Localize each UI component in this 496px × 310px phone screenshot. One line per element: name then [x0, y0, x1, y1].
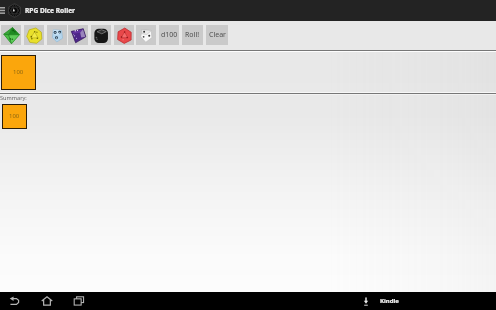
button[interactable]: Back: [7, 293, 23, 309]
staticText: RPG Dice Roller: [25, 6, 76, 15]
button[interactable]: d100: [159, 25, 179, 45]
staticText: 100: [9, 112, 20, 120]
staticText: Clear: [209, 30, 226, 40]
button[interactable]: Recents: [71, 293, 87, 309]
button[interactable]: Menu: [0, 0, 6, 21]
button[interactable]: d12: [91, 25, 111, 45]
button[interactable]: 100: [3, 105, 26, 128]
button[interactable]: Home: [39, 293, 55, 309]
button[interactable]: 100: [2, 56, 35, 89]
button[interactable]: Clear: [206, 25, 228, 45]
button[interactable]: d20: [114, 25, 134, 45]
button[interactable]: d10: [68, 25, 88, 45]
staticText: Roll!: [185, 30, 200, 40]
staticText: Summary:: [0, 94, 27, 102]
button[interactable]: d100: [136, 25, 156, 45]
button[interactable]: d8: [47, 25, 67, 45]
button[interactable]: Kindle: [360, 297, 402, 306]
button[interactable]: App icon: [6, 0, 22, 21]
staticText: 100: [13, 68, 24, 76]
staticText: Kindle: [380, 297, 399, 305]
button[interactable]: d4: [1, 25, 21, 45]
staticText: d100: [161, 30, 178, 40]
button[interactable]: Roll!: [182, 25, 203, 45]
button[interactable]: d6: [24, 25, 44, 45]
